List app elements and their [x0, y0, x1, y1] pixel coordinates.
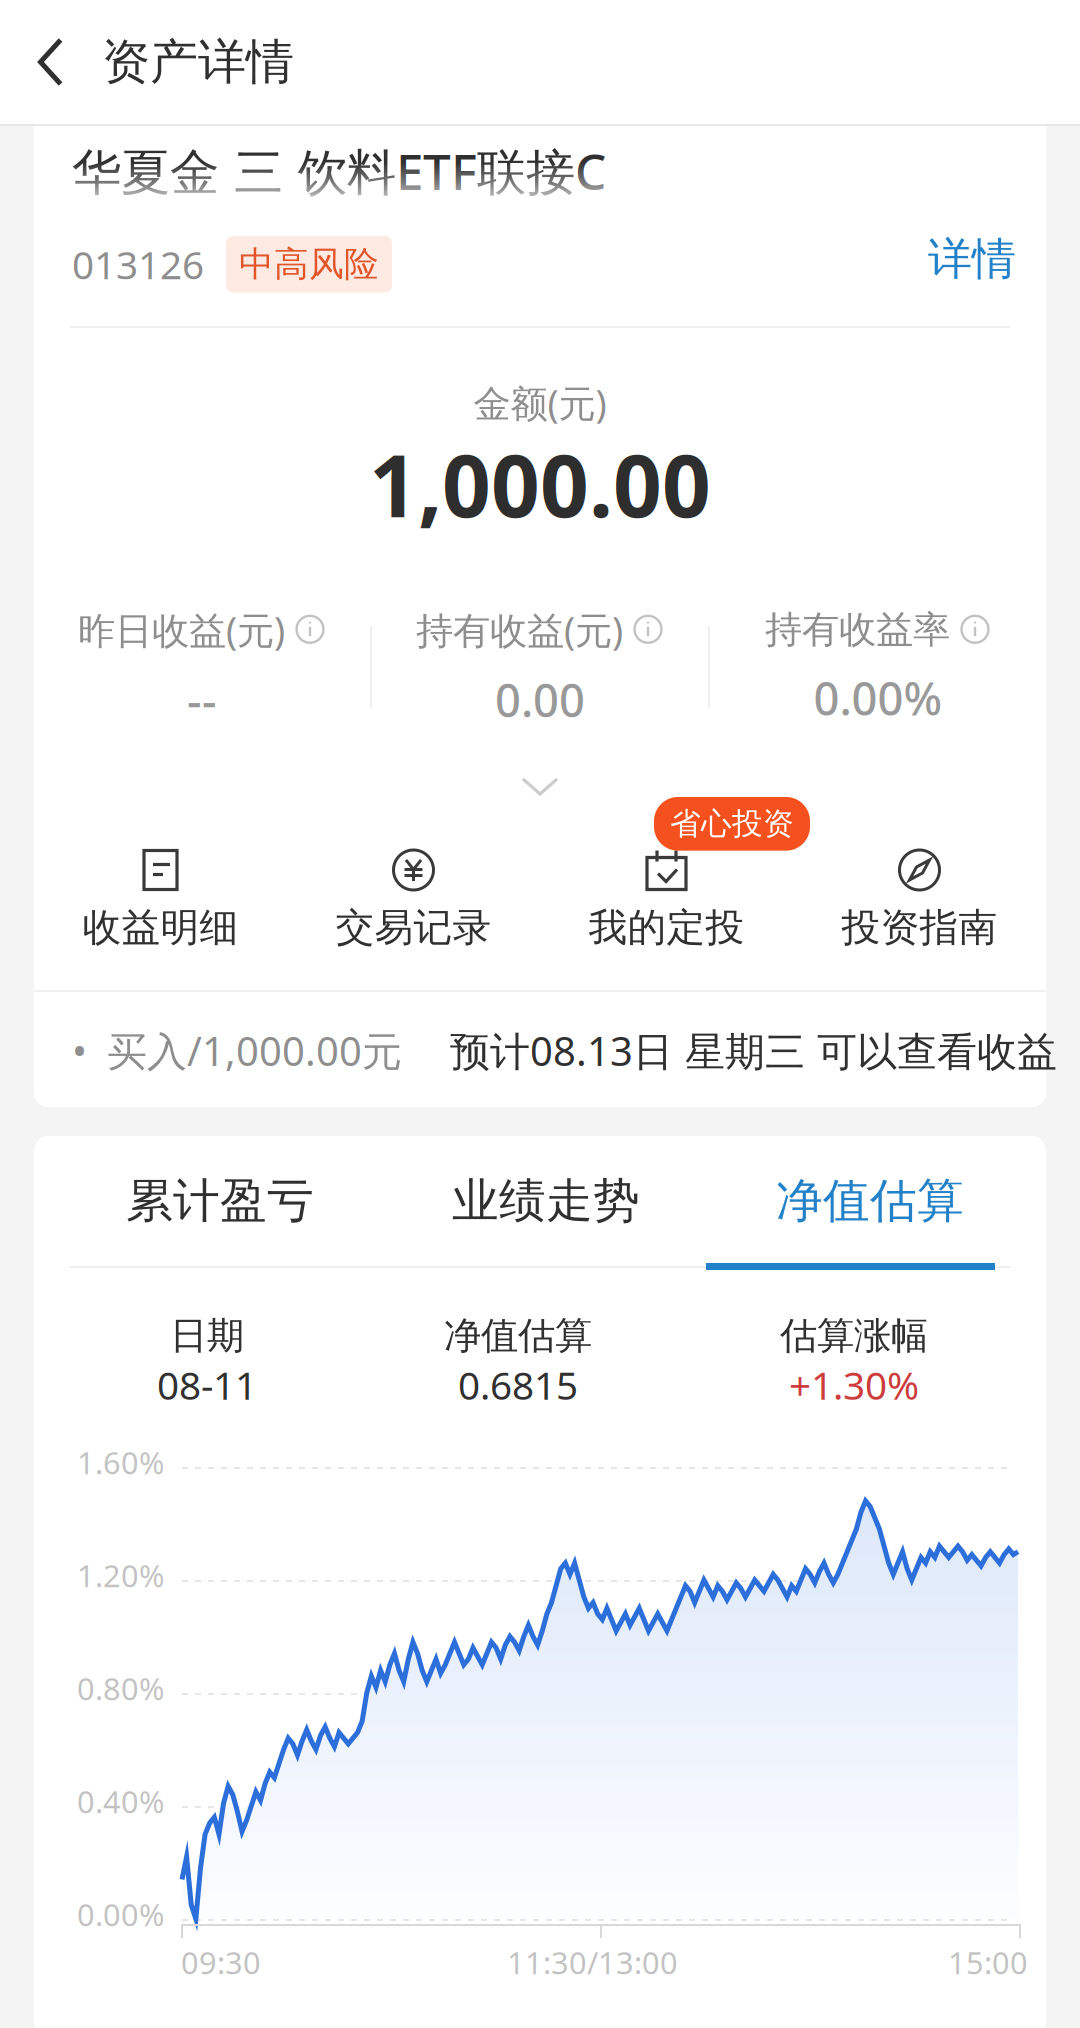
staticText: 详情: [928, 232, 1016, 286]
button[interactable]: 净值估算: [748, 1159, 992, 1243]
staticText: 0.00: [495, 670, 585, 730]
staticText: 预计08.13日 星期三 可以查看收益: [450, 1024, 1057, 1077]
button[interactable]: 累计盈亏: [98, 1159, 342, 1243]
staticText: 08-11: [157, 1359, 257, 1410]
staticText: 1.60%: [77, 1442, 164, 1483]
staticText: 0.40%: [77, 1781, 164, 1822]
staticText: 我的定投: [588, 904, 744, 951]
staticText: 业绩走势: [452, 1172, 640, 1230]
staticText: 持有收益(元): [416, 605, 623, 655]
staticText: +1.30%: [789, 1359, 919, 1410]
staticText: --: [187, 670, 217, 730]
staticText: 日期: [170, 1313, 244, 1359]
staticText: 15:00: [948, 1942, 1028, 1983]
staticText: 交易记录: [335, 904, 491, 951]
staticText: 净值估算: [444, 1313, 592, 1359]
button[interactable]: 业绩走势: [424, 1159, 668, 1243]
staticText: 1,000.00: [369, 428, 711, 541]
staticText: 净值估算: [776, 1172, 964, 1230]
staticText: 累计盈亏: [126, 1172, 314, 1230]
staticText: 09:30: [181, 1942, 261, 1983]
staticText: 0.80%: [77, 1668, 164, 1709]
staticText: 1.20%: [77, 1555, 164, 1596]
staticText: 收益明细: [82, 904, 238, 951]
staticText: 0.6815: [458, 1359, 578, 1410]
staticText: 持有收益率: [765, 607, 950, 653]
button[interactable]: 交易记录: [287, 848, 540, 951]
staticText: 中高风险: [239, 243, 379, 286]
staticText: 0.00%: [813, 668, 942, 728]
staticText: 013126: [72, 239, 204, 290]
staticText: 11:30/13:00: [507, 1942, 678, 1983]
staticText: 华夏金 三 饮料ETF联接C: [72, 138, 606, 203]
staticText: 估算涨幅: [780, 1313, 928, 1359]
staticText: 省心投资: [670, 805, 794, 843]
staticText: 资产详情: [102, 32, 294, 91]
staticText: 金额(元): [473, 378, 606, 428]
staticText: 0.00%: [77, 1894, 164, 1935]
button[interactable]: 返回: [0, 0, 102, 124]
button[interactable]: 我的定投: [540, 848, 793, 951]
staticText: • 买入/1,000.00元: [72, 1024, 402, 1077]
staticText: 投资指南: [841, 904, 997, 951]
button[interactable]: 详情: [928, 232, 1016, 286]
button[interactable]: 投资指南: [793, 848, 1046, 951]
button[interactable]: 收益明细: [34, 848, 287, 951]
staticText: 昨日收益(元): [78, 605, 285, 655]
